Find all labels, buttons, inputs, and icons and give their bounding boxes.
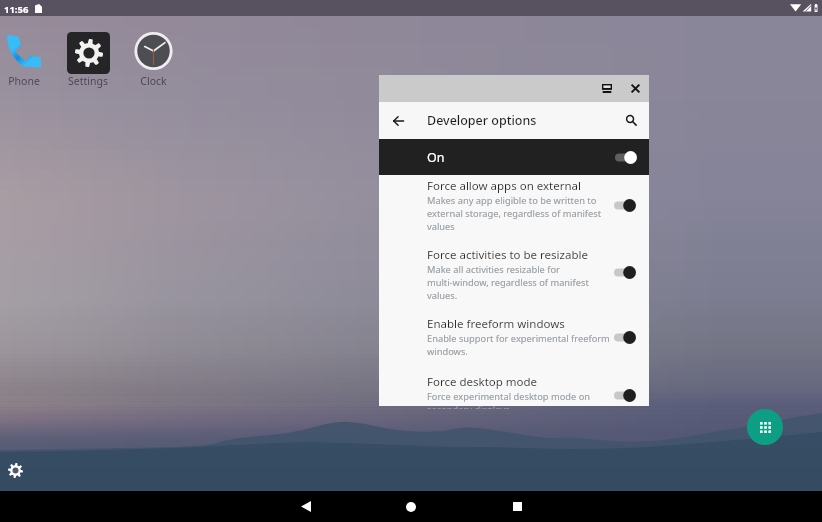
button[interactable] (66, 30, 111, 74)
button[interactable] (614, 199, 636, 212)
button[interactable] (614, 331, 636, 344)
staticText: Force experimental desktop mode on (427, 390, 591, 403)
staticText: external storage, regardless of manifest (427, 207, 602, 220)
button[interactable] (132, 30, 175, 74)
button[interactable]: Back (285, 491, 327, 522)
staticText: Developer options (427, 112, 537, 129)
staticText: 11:56 (4, 3, 29, 16)
button[interactable]: All apps (747, 409, 783, 445)
staticText: Makes any app eligible to be written to (427, 194, 597, 207)
button[interactable]: Enable freeform windows (379, 313, 649, 371)
button[interactable] (4, 30, 46, 74)
staticText: multi-window, regardless of manifest (427, 276, 589, 289)
button[interactable] (614, 389, 636, 402)
button[interactable]: Settings (5, 460, 25, 480)
staticText: secondary displays (427, 403, 510, 409)
button[interactable]: Force allow apps on external (379, 175, 649, 244)
staticText: Make all activities resizable for (427, 263, 560, 276)
staticText: Force desktop mode (427, 374, 538, 390)
button[interactable]: Home (390, 491, 432, 522)
button[interactable]: Back (384, 102, 412, 139)
button[interactable]: Force activities to be resizable (379, 244, 649, 313)
button[interactable]: Search (617, 102, 645, 139)
staticText: values (427, 220, 455, 233)
staticText: Enable support for experimental freeform (427, 332, 610, 345)
staticText: Force activities to be resizable (427, 247, 588, 263)
staticText: Settings (68, 74, 108, 88)
staticText: windows. (427, 345, 468, 358)
staticText: Enable freeform windows (427, 316, 565, 332)
staticText: Clock (140, 74, 167, 88)
button[interactable]: Restore window (589, 76, 625, 101)
button[interactable] (614, 266, 636, 279)
staticText: Force allow apps on external (427, 178, 581, 194)
button[interactable] (615, 151, 637, 164)
button[interactable]: Force desktop mode (379, 371, 649, 406)
button[interactable]: Close (619, 76, 651, 101)
button[interactable]: On (379, 139, 649, 175)
button[interactable]: Recents (496, 491, 538, 522)
staticText: values. (427, 289, 458, 302)
staticText: On (427, 149, 445, 166)
staticText: Phone (8, 74, 40, 88)
